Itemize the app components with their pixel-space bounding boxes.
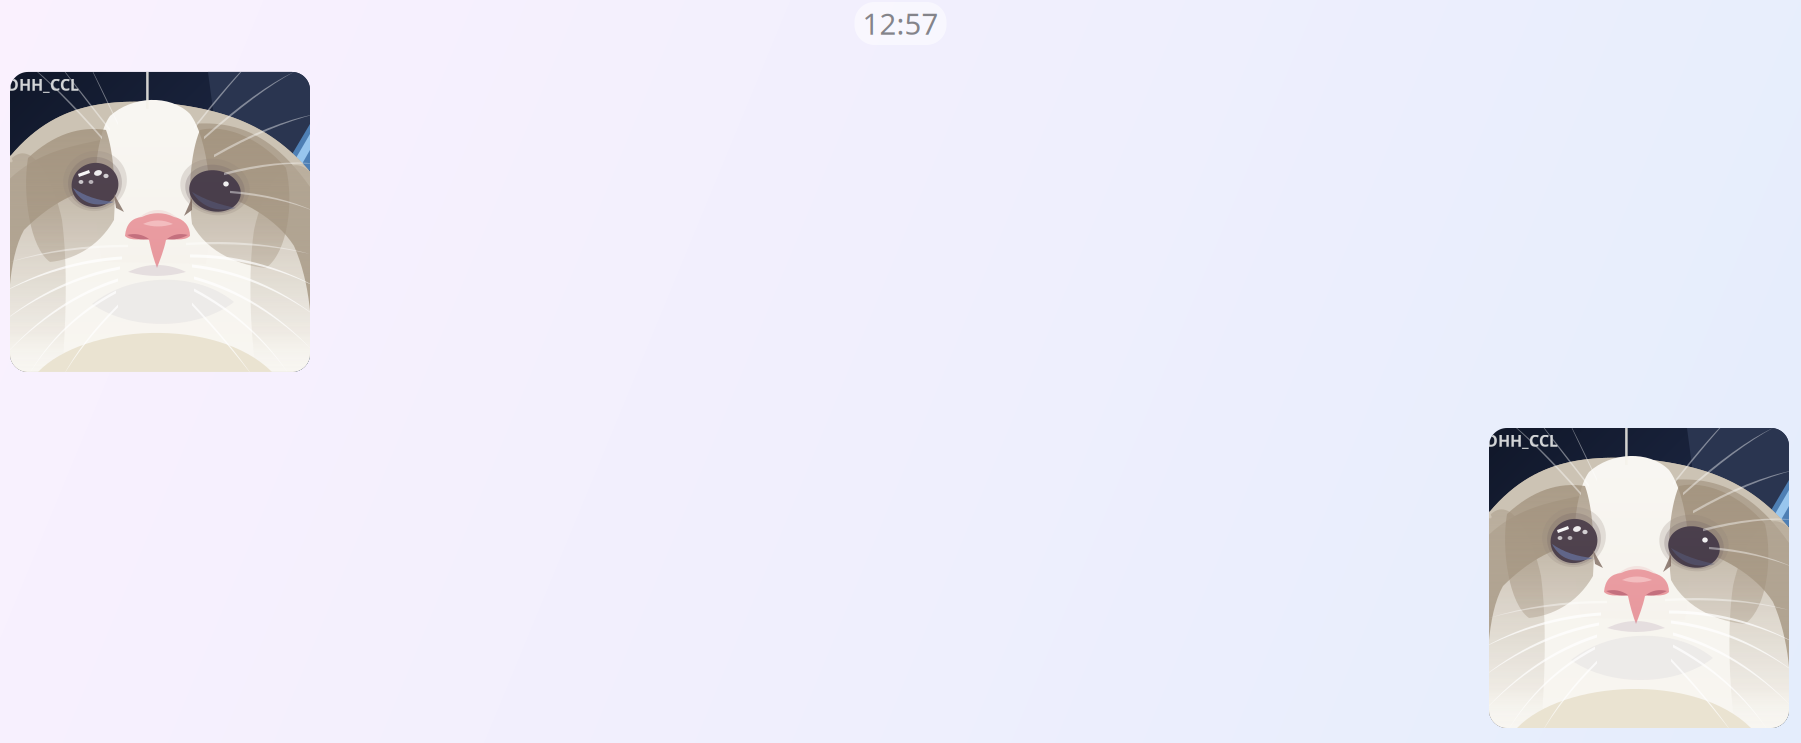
staticText: 12:57 [862, 4, 938, 43]
button[interactable]: Photo you sent [1489, 428, 1789, 728]
staticText: DHH_CCL [1486, 430, 1558, 451]
staticText: DHH_CCL [7, 74, 79, 95]
button[interactable]: Photo from contact [10, 72, 310, 372]
